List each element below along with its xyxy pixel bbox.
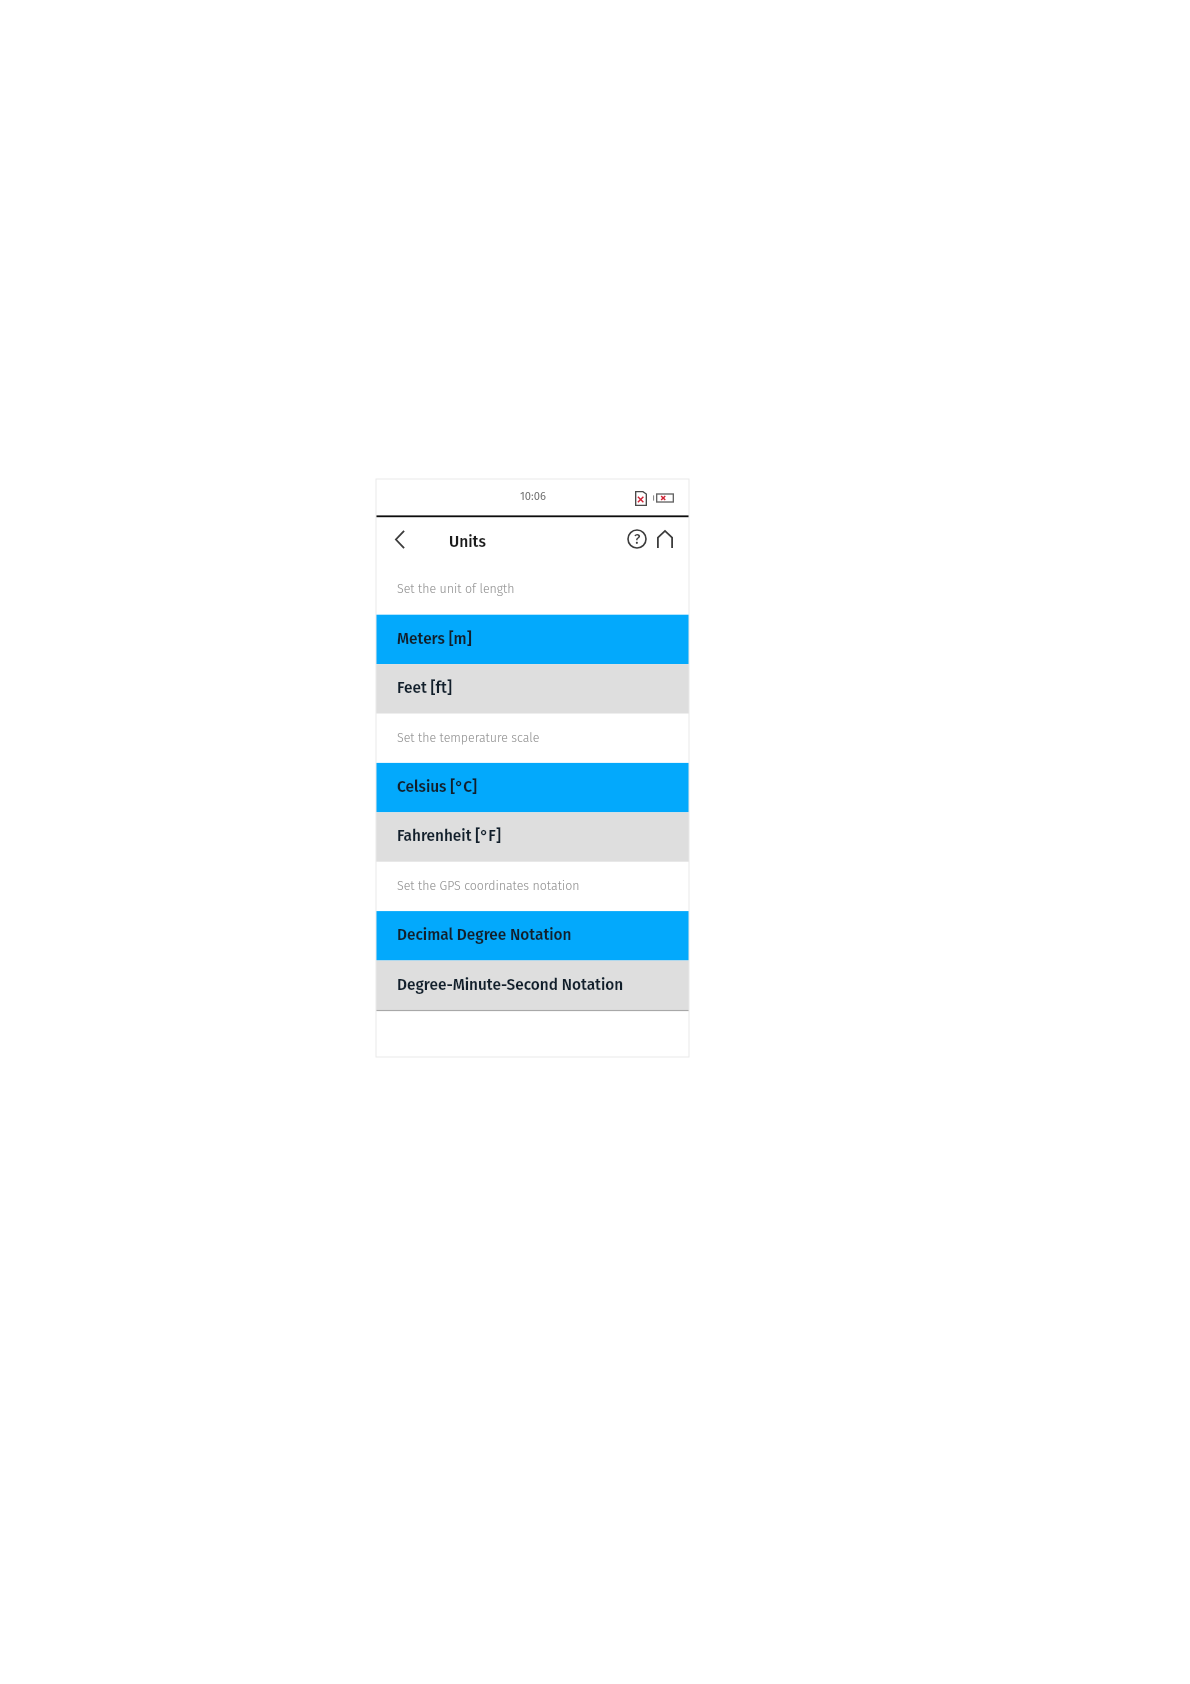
staticText: Celsius [°C] [397,778,477,796]
button[interactable]: Fahrenheit [°F] [376,812,689,861]
staticText: Set the temperature scale [397,730,540,745]
staticText: Fahrenheit [°F] [397,827,501,845]
staticText: Decimal Degree Notation [397,926,572,944]
button[interactable]: Degree-Minute-Second Notation [376,961,689,1010]
button[interactable]: Meters [m] [376,615,689,664]
button[interactable]: Home [651,525,679,553]
button[interactable]: Feet [ft] [376,664,689,713]
staticText: ? [634,531,641,547]
button[interactable]: Help [623,525,651,553]
staticText: Set the GPS coordinates notation [397,878,580,893]
button[interactable]: Decimal Degree Notation [376,911,689,960]
button[interactable]: Back [385,524,415,554]
staticText: Feet [ft] [397,679,452,697]
staticText: Degree-Minute-Second Notation [397,976,624,994]
staticText: 10:06 [520,490,546,503]
staticText: Units [449,532,487,551]
staticText: Set the unit of length [397,581,515,596]
staticText: Meters [m] [397,630,472,648]
button[interactable]: Celsius [°C] [376,763,689,812]
